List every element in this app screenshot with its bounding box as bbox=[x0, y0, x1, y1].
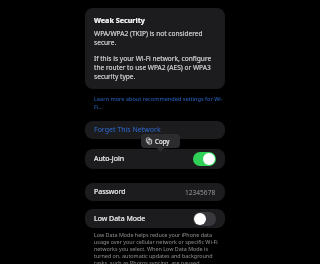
staticText: Copy bbox=[155, 137, 170, 145]
staticText: If this is your Wi-Fi network, configure… bbox=[94, 54, 216, 81]
button[interactable]: Toggle on bbox=[193, 152, 216, 166]
staticText: Low Data Mode helps reduce your iPhone d… bbox=[94, 231, 221, 264]
staticText: Forget This Network bbox=[94, 125, 161, 135]
staticText: Weak Security bbox=[94, 15, 145, 25]
staticText: Auto-Join bbox=[94, 154, 125, 164]
button[interactable]: Forget This Network bbox=[85, 121, 225, 139]
staticText: Low Data Mode bbox=[94, 214, 146, 224]
button[interactable]: Auto-Join bbox=[85, 149, 225, 169]
staticText: Learn more about recommended settings fo… bbox=[94, 95, 225, 111]
button[interactable]: Password bbox=[85, 183, 225, 201]
button[interactable]: Toggle off bbox=[193, 212, 216, 226]
button[interactable]: Copy bbox=[141, 134, 180, 148]
staticText: 12345678 bbox=[185, 188, 216, 197]
button[interactable]: Low Data Mode bbox=[85, 209, 225, 228]
staticText: WPA/WPA2 (TKIP) is not considered secure… bbox=[94, 29, 216, 47]
staticText: Password bbox=[94, 187, 126, 197]
button[interactable]: Learn more about recommended settings fo… bbox=[85, 93, 225, 113]
